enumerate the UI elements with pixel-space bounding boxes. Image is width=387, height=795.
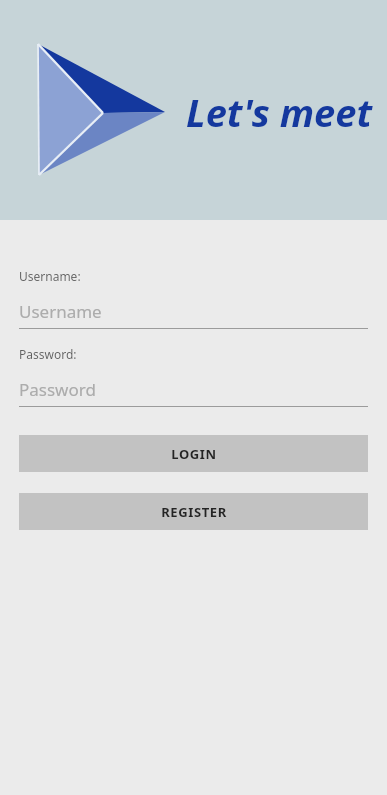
button[interactable]: LOGIN — [19, 435, 368, 472]
staticText: Password: — [19, 346, 77, 362]
staticText: Username: — [19, 268, 81, 284]
button[interactable]: Username — [19, 300, 368, 329]
staticText: LOGIN — [171, 445, 217, 463]
button[interactable]: Password — [19, 378, 368, 407]
staticText: REGISTER — [161, 503, 227, 521]
staticText: Let's meet — [186, 86, 372, 138]
staticText: Password — [19, 378, 96, 401]
staticText: Username — [19, 300, 102, 323]
button[interactable]: REGISTER — [19, 493, 368, 530]
